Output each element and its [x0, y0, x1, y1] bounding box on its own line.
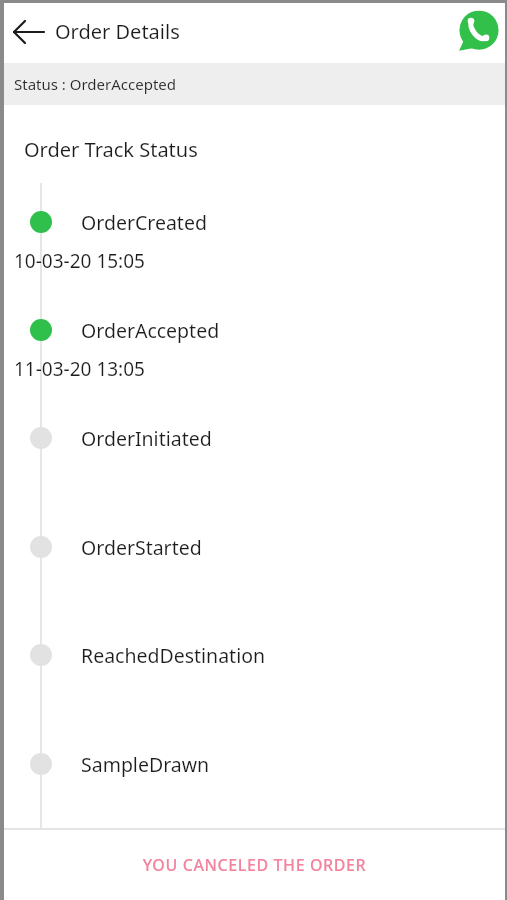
staticText: OrderCreated [81, 209, 207, 236]
button[interactable] [4, 414, 505, 462]
button[interactable]: Back [6, 10, 52, 54]
button[interactable] [4, 523, 505, 571]
button[interactable]: YOU CANCELED THE ORDER [4, 832, 505, 898]
staticText: 10-03-20 15:05 [14, 248, 145, 274]
staticText: SampleDrawn [81, 751, 210, 778]
staticText: 11-03-20 13:05 [14, 356, 145, 382]
staticText: YOU CANCELED THE ORDER [4, 854, 505, 876]
button[interactable] [4, 740, 505, 788]
button[interactable]: Chat on WhatsApp [456, 8, 502, 54]
staticText: Status : OrderAccepted [14, 74, 177, 94]
staticText: Order Track Status [24, 136, 198, 163]
staticText: OrderInitiated [81, 425, 212, 452]
staticText: ReachedDestination [81, 642, 266, 669]
staticText: OrderAccepted [81, 317, 220, 344]
button[interactable] [4, 198, 505, 270]
staticText: OrderStarted [81, 534, 202, 561]
button[interactable] [4, 631, 505, 679]
button[interactable] [4, 306, 505, 378]
staticText: Order Details [55, 18, 180, 45]
